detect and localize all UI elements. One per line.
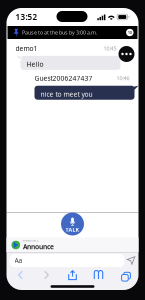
button[interactable]: Aa [9, 254, 124, 267]
staticText: nice to meet you [40, 90, 92, 99]
staticText: 13:52 [15, 12, 37, 22]
staticText: Hello [26, 60, 43, 69]
staticText: Announce [23, 242, 54, 251]
staticText: 10:46 [116, 75, 129, 82]
button[interactable]: Bookmarks [87, 267, 109, 282]
button[interactable]: Send [124, 254, 137, 267]
staticText: ANNOUNCE [23, 239, 38, 242]
staticText: Guest2006247437 [34, 74, 92, 83]
staticText: 10:45 [103, 45, 116, 52]
staticText: demo1 [15, 44, 37, 53]
button[interactable]: More [118, 40, 138, 62]
button[interactable]: Forward [35, 267, 57, 282]
button[interactable]: Tabs [113, 267, 135, 282]
staticText: TALK [65, 226, 79, 233]
button[interactable]: Back [9, 267, 31, 282]
button[interactable]: Talk [61, 212, 84, 235]
staticText: Aa [14, 256, 22, 265]
staticText: Pause to at the bus by 3:00 a.m. [22, 29, 97, 36]
staticText: 10 [128, 30, 132, 35]
button[interactable]: Pause to at the bus by 3:00 a.m. [7, 26, 137, 39]
button[interactable]: ANNOUNCE [6, 237, 138, 252]
button[interactable]: Share [61, 267, 83, 282]
